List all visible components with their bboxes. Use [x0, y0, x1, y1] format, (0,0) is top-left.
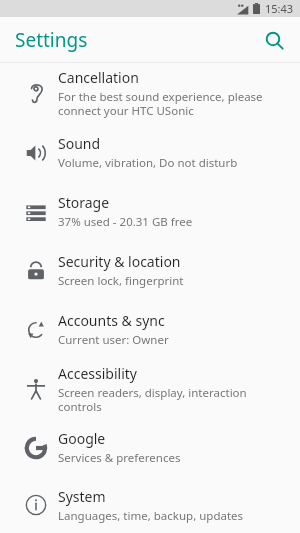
button[interactable]: Storage [0, 182, 300, 241]
staticText: Settings [15, 27, 88, 53]
staticText: System [58, 487, 106, 506]
button[interactable]: Sound [0, 123, 300, 182]
staticText: Screen readers, display, interaction con… [58, 385, 288, 414]
staticText: Services & preferences [58, 450, 181, 466]
staticText: Accessibility [58, 364, 137, 383]
button[interactable]: Accessibility [0, 359, 300, 418]
staticText: Storage [58, 193, 110, 212]
staticText: Current user: Owner [58, 332, 169, 348]
staticText: Volume, vibration, Do not disturb [58, 155, 238, 171]
staticText: Security & location [58, 252, 181, 271]
staticText: For the best sound experience, please co… [58, 89, 288, 118]
staticText: Cancellation [58, 68, 139, 87]
staticText: Screen lock, fingerprint [58, 273, 184, 289]
button[interactable]: Google [0, 418, 300, 477]
staticText: Languages, time, backup, updates [58, 508, 244, 524]
button[interactable]: Cancellation [0, 63, 300, 123]
staticText: Sound [58, 134, 101, 153]
staticText: Google [58, 429, 106, 448]
button[interactable]: Security & location [0, 241, 300, 300]
staticText: 37% used - 20.31 GB free [58, 214, 193, 230]
staticText: Accounts & sync [58, 311, 165, 330]
button[interactable]: Search [254, 20, 294, 60]
staticText: 15:43 [265, 1, 294, 16]
button[interactable]: Accounts & sync [0, 300, 300, 359]
button[interactable]: System [0, 477, 300, 533]
